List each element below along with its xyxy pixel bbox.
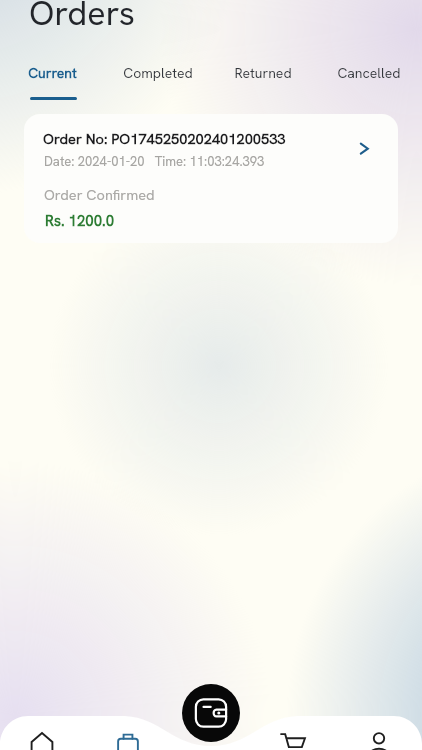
staticText: Completed: [123, 64, 193, 82]
button[interactable]: Cancelled: [316, 64, 422, 92]
staticText: Order No: PO1745250202401200533: [43, 129, 286, 148]
button[interactable]: Returned: [210, 64, 316, 92]
staticText: Rs. 1200.0: [45, 211, 115, 231]
button[interactable]: Orders: [115, 731, 141, 750]
button[interactable]: Home: [29, 731, 55, 750]
button[interactable]: Completed: [105, 64, 210, 92]
button[interactable]: Current: [0, 64, 105, 92]
staticText: Cancelled: [337, 64, 401, 82]
button[interactable]: Wallet: [182, 684, 240, 742]
staticText: Date: 2024-01-20 Time: 11:03:24.393: [44, 153, 265, 170]
staticText: Orders: [29, 0, 135, 35]
staticText: Returned: [234, 64, 292, 82]
button[interactable]: Order No: PO1745250202401200533: [24, 114, 398, 243]
staticText: Current: [28, 64, 77, 82]
button[interactable]: Cart: [280, 731, 306, 750]
button[interactable]: Profile: [366, 731, 392, 750]
staticText: Order Confirmed: [44, 185, 155, 204]
